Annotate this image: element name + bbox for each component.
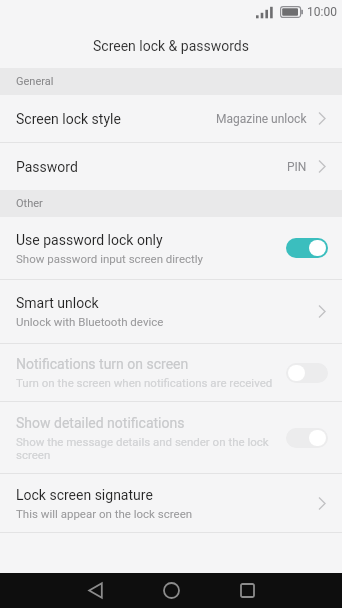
staticText: Turn on the screen when notifications ar… <box>16 376 273 389</box>
staticText: Use password lock only <box>16 232 163 248</box>
staticText: Password <box>16 159 78 175</box>
button[interactable] <box>87 582 104 599</box>
staticText: Unlock with Bluetooth device <box>16 315 164 328</box>
button[interactable]: Smart unlock <box>0 280 342 343</box>
staticText: Show password input screen directly <box>16 252 204 265</box>
staticText: Lock screen signature <box>16 487 153 503</box>
button[interactable]: Lock screen signature <box>0 474 342 532</box>
button[interactable]: Screen lock style <box>0 95 342 142</box>
staticText: 10:00 <box>307 5 337 19</box>
staticText: Other <box>16 197 43 210</box>
staticText: Show the message details and sender on t… <box>16 435 278 461</box>
button[interactable] <box>239 582 256 599</box>
staticText: Screen lock style <box>16 111 121 127</box>
button[interactable] <box>286 428 328 448</box>
button[interactable]: Password <box>0 143 342 190</box>
staticText: This will appear on the lock screen <box>16 507 193 520</box>
staticText: Show detailed notifications <box>16 415 185 431</box>
staticText: Smart unlock <box>16 295 99 311</box>
staticText: PIN <box>287 160 307 174</box>
button[interactable]: Notifications turn on screen <box>0 344 342 401</box>
button[interactable] <box>286 238 328 258</box>
staticText: General <box>16 75 54 88</box>
button[interactable] <box>286 363 328 383</box>
staticText: Screen lock & passwords <box>93 38 249 54</box>
button[interactable]: Use password lock only <box>0 217 342 279</box>
button[interactable]: Show detailed notifications <box>0 402 342 473</box>
staticText: Notifications turn on screen <box>16 356 189 372</box>
staticText: Magazine unlock <box>216 112 307 126</box>
button[interactable] <box>163 582 180 599</box>
